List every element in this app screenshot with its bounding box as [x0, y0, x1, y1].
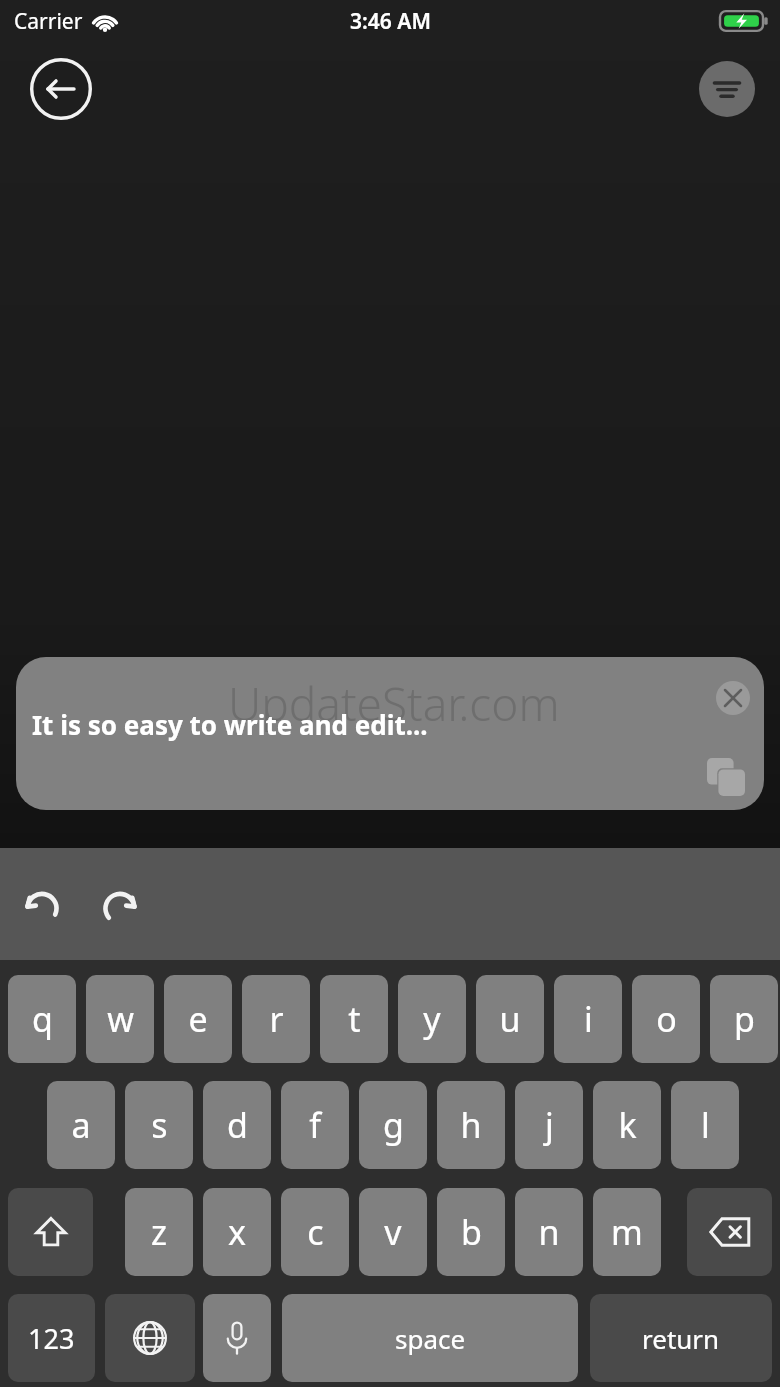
button[interactable]: y [398, 975, 466, 1063]
button[interactable]: Shift [8, 1188, 93, 1276]
button[interactable]: e [164, 975, 232, 1063]
staticText: y [423, 996, 441, 1042]
button[interactable]: Redo [88, 848, 152, 960]
staticText: s [151, 1102, 168, 1148]
button[interactable]: t [320, 975, 388, 1063]
staticText: UpdateStar.com [228, 672, 560, 735]
button[interactable]: u [476, 975, 544, 1063]
button[interactable]: n [515, 1188, 583, 1276]
button[interactable]: l [671, 1081, 739, 1169]
button[interactable]: Back [30, 58, 92, 120]
button[interactable]: s [125, 1081, 193, 1169]
button[interactable]: Dictate [203, 1294, 271, 1382]
button[interactable]: v [359, 1188, 427, 1276]
button[interactable]: Undo [10, 848, 74, 960]
staticText: f [309, 1102, 321, 1148]
button[interactable]: m [593, 1188, 661, 1276]
staticText: 123 [28, 1320, 75, 1357]
staticText: It is so easy to write and edit... [32, 707, 428, 742]
staticText: return [642, 1321, 720, 1356]
button[interactable]: w [86, 975, 154, 1063]
staticText: g [383, 1102, 404, 1148]
button[interactable]: UpdateStar.com [16, 657, 764, 810]
button[interactable]: c [281, 1188, 349, 1276]
button[interactable]: q [8, 975, 76, 1063]
button[interactable]: a [47, 1081, 115, 1169]
staticText: v [384, 1209, 402, 1255]
button[interactable]: return [590, 1294, 772, 1382]
button[interactable]: Copy [704, 755, 748, 799]
button[interactable]: k [593, 1081, 661, 1169]
button[interactable]: Menu [699, 61, 755, 117]
staticText: q [32, 996, 53, 1042]
staticText: Carrier [14, 7, 83, 36]
button[interactable]: space [282, 1294, 578, 1382]
button[interactable]: d [203, 1081, 271, 1169]
staticText: i [584, 996, 593, 1042]
staticText: u [499, 996, 521, 1042]
staticText: h [460, 1102, 482, 1148]
button[interactable]: Numbers [8, 1294, 95, 1382]
staticText: c [307, 1209, 324, 1255]
button[interactable]: f [281, 1081, 349, 1169]
button[interactable]: x [203, 1188, 271, 1276]
staticText: n [538, 1209, 560, 1255]
button[interactable]: p [710, 975, 778, 1063]
button[interactable]: Backspace [687, 1188, 772, 1276]
staticText: j [545, 1102, 554, 1148]
staticText: k [618, 1102, 637, 1148]
button[interactable]: h [437, 1081, 505, 1169]
staticText: a [71, 1102, 91, 1148]
staticText: UpdateStar.com [228, 672, 560, 735]
staticText: e [188, 996, 208, 1042]
button[interactable]: Close [716, 681, 750, 715]
button[interactable]: o [632, 975, 700, 1063]
staticText: r [269, 996, 284, 1042]
staticText: 3:46 AM [350, 7, 431, 36]
staticText: b [461, 1209, 482, 1255]
button[interactable]: r [242, 975, 310, 1063]
staticText: o [656, 996, 677, 1042]
staticText: m [611, 1209, 643, 1255]
staticText: space [395, 1321, 466, 1356]
staticText: z [151, 1209, 167, 1255]
staticText: x [228, 1209, 246, 1255]
staticText: t [348, 996, 361, 1042]
button[interactable]: b [437, 1188, 505, 1276]
staticText: p [734, 996, 755, 1042]
button[interactable]: z [125, 1188, 193, 1276]
staticText: d [227, 1102, 248, 1148]
button[interactable]: i [554, 975, 622, 1063]
button[interactable]: g [359, 1081, 427, 1169]
staticText: w [107, 996, 134, 1042]
button[interactable]: j [515, 1081, 583, 1169]
staticText: l [701, 1102, 710, 1148]
button[interactable]: Change keyboard [105, 1294, 195, 1382]
